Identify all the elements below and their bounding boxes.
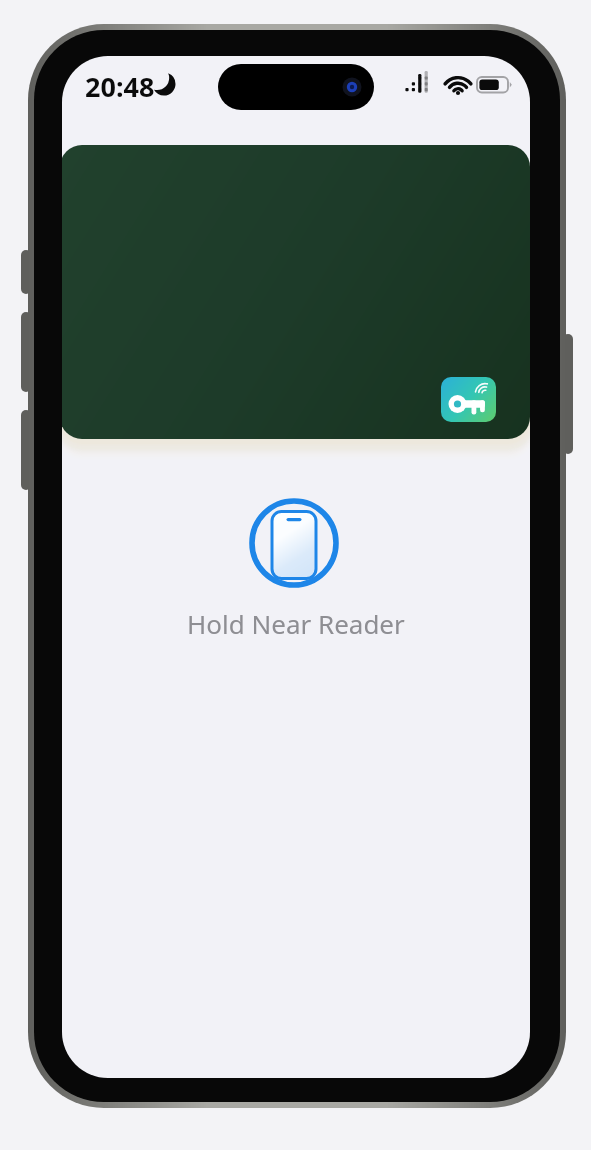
staticText: Hold Near Reader [187,606,405,641]
staticText: 20:48 [85,68,155,105]
button[interactable]: Car key pass [60,145,530,439]
